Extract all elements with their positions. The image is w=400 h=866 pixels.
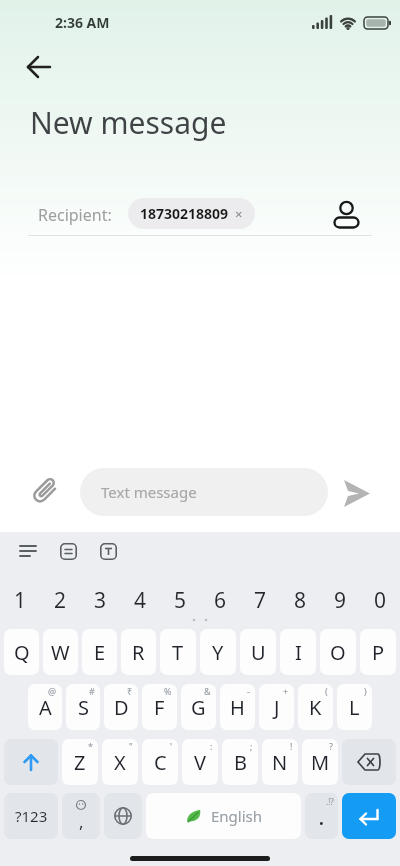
- staticText: ?: [329, 740, 333, 752]
- staticText: M: [311, 749, 330, 776]
- button[interactable]: B: [222, 739, 258, 785]
- button[interactable]: .!?: [305, 793, 338, 839]
- button[interactable]: 18730218809: [128, 198, 255, 229]
- button[interactable]: N: [262, 739, 298, 785]
- staticText: 2: [54, 586, 67, 615]
- button[interactable]: X: [102, 739, 138, 785]
- staticText: K: [309, 694, 322, 721]
- staticText: !: [290, 740, 293, 752]
- button[interactable]: [100, 543, 117, 560]
- button[interactable]: C: [142, 739, 178, 785]
- button[interactable]: [342, 793, 396, 839]
- button[interactable]: [60, 543, 77, 560]
- button[interactable]: V: [182, 739, 218, 785]
- button[interactable]: 9: [320, 577, 360, 623]
- staticText: 2:36 AM: [55, 13, 110, 32]
- button[interactable]: [331, 196, 361, 230]
- staticText: 7: [254, 586, 267, 615]
- button[interactable]: R: [121, 629, 156, 675]
- button[interactable]: [4, 739, 58, 785]
- button[interactable]: P: [360, 629, 396, 675]
- button[interactable]: [104, 793, 142, 839]
- staticText: E: [94, 639, 106, 666]
- staticText: Y: [212, 639, 224, 666]
- button[interactable]: 1: [0, 577, 40, 623]
- staticText: 1: [14, 586, 27, 615]
- button[interactable]: F: [142, 684, 177, 730]
- staticText: G: [191, 694, 206, 721]
- staticText: J: [274, 694, 280, 721]
- staticText: ": [129, 740, 133, 752]
- button[interactable]: 0: [360, 577, 400, 623]
- staticText: D: [114, 694, 129, 721]
- staticText: #: [89, 685, 95, 697]
- button[interactable]: [26, 55, 52, 81]
- staticText: English: [211, 806, 263, 826]
- button[interactable]: English: [146, 793, 301, 839]
- button[interactable]: [343, 480, 371, 507]
- staticText: ₹: [127, 685, 133, 697]
- button[interactable]: K: [298, 684, 333, 730]
- button[interactable]: A: [28, 684, 62, 730]
- staticText: -: [247, 685, 250, 697]
- button[interactable]: [342, 739, 396, 785]
- button[interactable]: E: [82, 629, 117, 675]
- button[interactable]: [25, 472, 63, 510]
- button[interactable]: Z: [62, 739, 98, 785]
- staticText: 18730218809: [140, 204, 229, 223]
- button[interactable]: L: [337, 684, 372, 730]
- button[interactable]: W: [43, 629, 78, 675]
- staticText: ;: [250, 740, 253, 752]
- staticText: ): [364, 685, 367, 697]
- button[interactable]: [20, 543, 36, 559]
- button[interactable]: 8: [280, 577, 320, 623]
- staticText: 6: [214, 586, 227, 615]
- staticText: N: [272, 749, 288, 776]
- staticText: *: [88, 740, 93, 752]
- staticText: W: [51, 639, 70, 666]
- staticText: U: [251, 639, 266, 666]
- staticText: ×: [235, 205, 243, 223]
- button[interactable]: J: [259, 684, 294, 730]
- button[interactable]: 4: [120, 577, 160, 623]
- button[interactable]: 7: [240, 577, 280, 623]
- button[interactable]: U: [240, 629, 276, 675]
- staticText: Q: [14, 639, 30, 666]
- staticText: A: [39, 694, 52, 721]
- staticText: ?123: [15, 806, 48, 826]
- button[interactable]: S: [66, 684, 100, 730]
- staticText: New message: [30, 102, 227, 143]
- button[interactable]: Y: [200, 629, 236, 675]
- staticText: .!?: [326, 796, 334, 807]
- button[interactable]: I: [280, 629, 316, 675]
- staticText: S: [78, 694, 89, 721]
- button[interactable]: D: [104, 684, 138, 730]
- button[interactable]: 5: [160, 577, 200, 623]
- staticText: C: [154, 749, 167, 776]
- staticText: (: [325, 685, 328, 697]
- button[interactable]: O: [320, 629, 356, 675]
- button[interactable]: 6: [200, 577, 240, 623]
- staticText: +: [283, 685, 289, 697]
- staticText: @: [48, 685, 57, 697]
- button[interactable]: G: [181, 684, 216, 730]
- button[interactable]: 2: [40, 577, 80, 623]
- staticText: ': [170, 740, 173, 752]
- button[interactable]: ,: [62, 793, 100, 839]
- button[interactable]: M: [302, 739, 338, 785]
- staticText: %: [164, 685, 172, 697]
- button[interactable]: H: [220, 684, 255, 730]
- staticText: V: [194, 749, 206, 776]
- staticText: 9: [334, 586, 347, 615]
- staticText: X: [114, 749, 126, 776]
- button[interactable]: Q: [4, 629, 39, 675]
- button[interactable]: ?123: [4, 793, 58, 839]
- staticText: L: [349, 694, 360, 721]
- staticText: O: [330, 639, 346, 666]
- button[interactable]: Text message: [80, 468, 328, 516]
- staticText: B: [234, 749, 247, 776]
- staticText: Text message: [101, 482, 197, 502]
- staticText: F: [154, 694, 165, 721]
- button[interactable]: T: [160, 629, 196, 675]
- button[interactable]: 3: [80, 577, 120, 623]
